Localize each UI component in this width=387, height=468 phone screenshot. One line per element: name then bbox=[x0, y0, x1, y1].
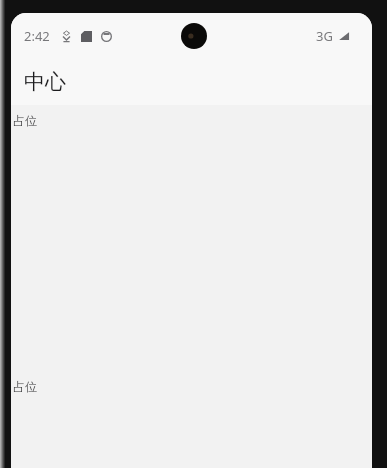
staticText: 2:42 bbox=[24, 27, 50, 45]
staticText: 3G bbox=[316, 27, 333, 45]
staticText: 占位 bbox=[13, 379, 37, 394]
staticText: 中心 bbox=[24, 69, 66, 95]
button[interactable]: 占位 bbox=[11, 376, 372, 396]
staticText: 占位 bbox=[13, 113, 37, 128]
button[interactable]: 中心 bbox=[11, 58, 372, 105]
button[interactable]: 占位 bbox=[11, 110, 372, 130]
